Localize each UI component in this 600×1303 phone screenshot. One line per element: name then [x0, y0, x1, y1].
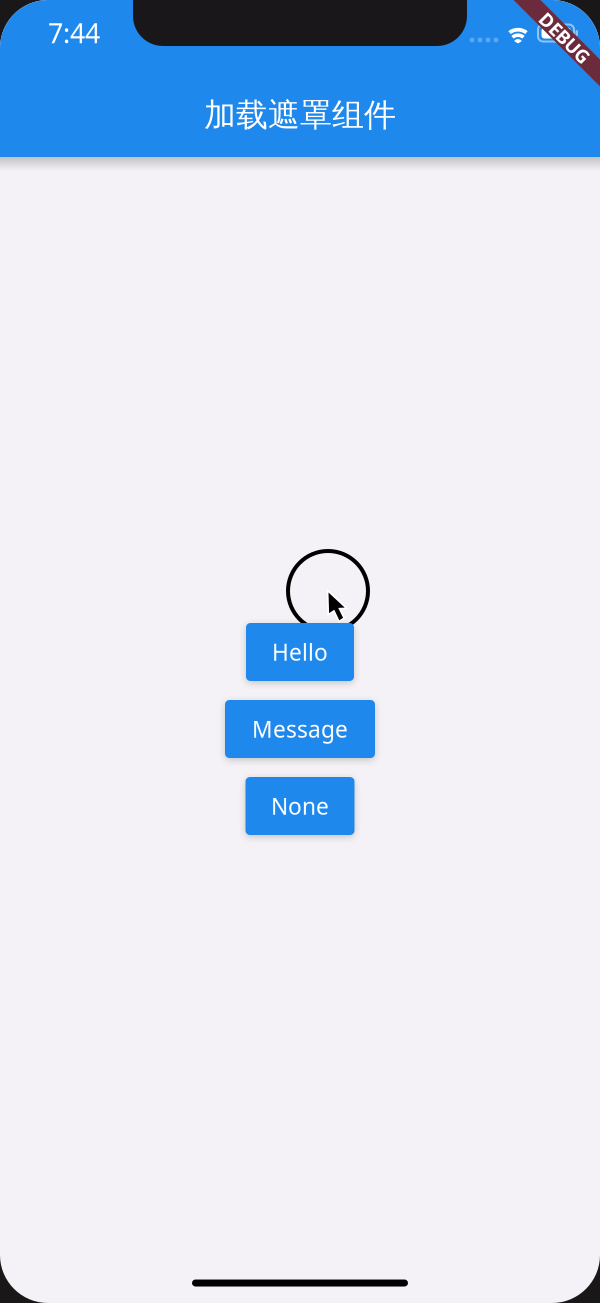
- staticText: DEBUG: [533, 26, 597, 50]
- button[interactable]: None: [245, 777, 354, 835]
- staticText: Hello: [272, 637, 328, 667]
- staticText: 7:44: [48, 15, 100, 51]
- staticText: None: [271, 791, 329, 821]
- button[interactable]: Message: [225, 700, 375, 758]
- staticText: 加载遮罩组件: [204, 95, 396, 135]
- staticText: Message: [252, 714, 348, 744]
- button[interactable]: Hello: [246, 623, 354, 681]
